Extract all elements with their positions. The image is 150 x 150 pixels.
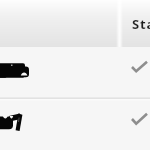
button[interactable]: Sta [0, 0, 150, 47]
button[interactable] [0, 98, 150, 150]
button[interactable]: Done [130, 59, 149, 74]
button[interactable] [0, 47, 150, 98]
staticText: Sta [132, 15, 150, 33]
button[interactable]: Done [130, 111, 149, 126]
